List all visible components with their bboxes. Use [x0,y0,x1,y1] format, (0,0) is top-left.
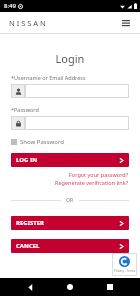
button[interactable] [11,84,129,98]
staticText: Privacy - Terms [114,269,136,273]
button[interactable] [11,116,129,130]
staticText: *Password [11,106,39,113]
staticText: *Username or Email Address [11,74,86,81]
staticText: OR [66,197,74,204]
button[interactable]: Menu [119,16,133,30]
button[interactable]: CANCEL [11,239,129,253]
staticText: REGISTER [16,219,45,227]
button[interactable]: reCAPTCHA [112,253,137,276]
staticText: Show Password [20,138,64,146]
staticText: Login [0,51,140,66]
button[interactable]: Show Password [11,138,64,146]
staticText: CANCEL [16,242,40,250]
staticText: LOG IN [16,156,38,164]
button[interactable]: Home [60,278,80,296]
button[interactable]: LOG IN [11,153,129,167]
staticText: N I S S A N [9,18,46,28]
staticText: 8:49 [4,2,16,10]
button[interactable]: Recent apps [100,278,120,296]
button[interactable]: Regenerate verification link? [55,179,129,186]
button[interactable]: REGISTER [11,216,129,230]
button[interactable]: Forgot your password? [69,171,129,178]
button[interactable]: Back [20,278,40,296]
